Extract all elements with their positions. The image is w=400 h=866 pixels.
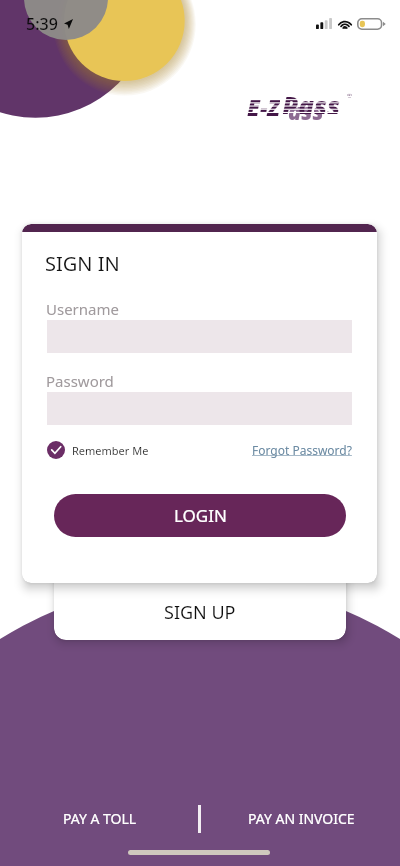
button[interactable]: SIGN UP bbox=[54, 556, 346, 640]
button[interactable]: PAY A TOLL bbox=[40, 804, 160, 832]
staticText: LOGIN bbox=[174, 504, 227, 527]
staticText: 5:39 bbox=[26, 13, 58, 35]
staticText: E-Z bbox=[247, 91, 280, 117]
button[interactable]: Remember Me bbox=[47, 441, 149, 459]
staticText: Remember Me bbox=[72, 443, 149, 458]
staticText: ass bbox=[288, 96, 324, 122]
staticText: PAY AN INVOICE bbox=[248, 809, 355, 828]
staticText: SIGN UP bbox=[164, 600, 236, 625]
staticText: Username bbox=[46, 299, 119, 319]
staticText: ® bbox=[347, 92, 352, 100]
staticText: Pass bbox=[282, 88, 341, 114]
staticText: Password bbox=[46, 371, 114, 391]
button[interactable]: PAY AN INVOICE bbox=[241, 804, 361, 832]
staticText: SIGN IN bbox=[45, 250, 120, 277]
button[interactable]: LOGIN bbox=[54, 494, 346, 537]
staticText: PAY A TOLL bbox=[63, 809, 137, 828]
button[interactable]: Forgot Password? bbox=[252, 442, 352, 458]
